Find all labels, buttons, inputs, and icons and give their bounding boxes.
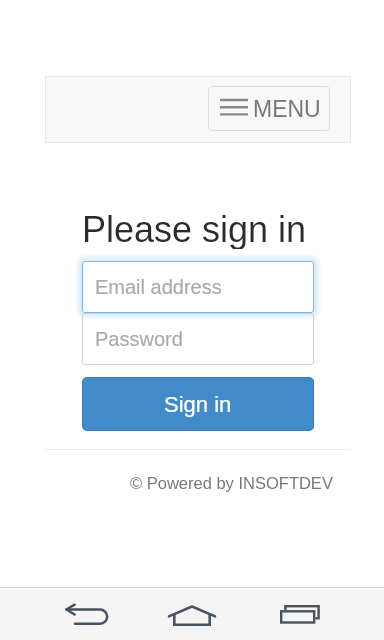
staticText: Password [95, 328, 183, 350]
button[interactable]: Back [51, 593, 123, 640]
button[interactable]: MENU [208, 86, 330, 131]
button[interactable]: Home [156, 590, 228, 640]
staticText: Email address [95, 276, 222, 298]
button[interactable]: Password [82, 313, 314, 365]
staticText: MENU [253, 96, 319, 122]
button[interactable]: Email address [82, 261, 314, 313]
staticText: Sign in [164, 392, 232, 417]
button[interactable]: Recent apps [264, 589, 336, 639]
button[interactable]: Sign in [82, 377, 314, 431]
staticText: © Powered by INSOFTDEV [130, 474, 333, 492]
staticText: Please sign in [82, 209, 304, 249]
